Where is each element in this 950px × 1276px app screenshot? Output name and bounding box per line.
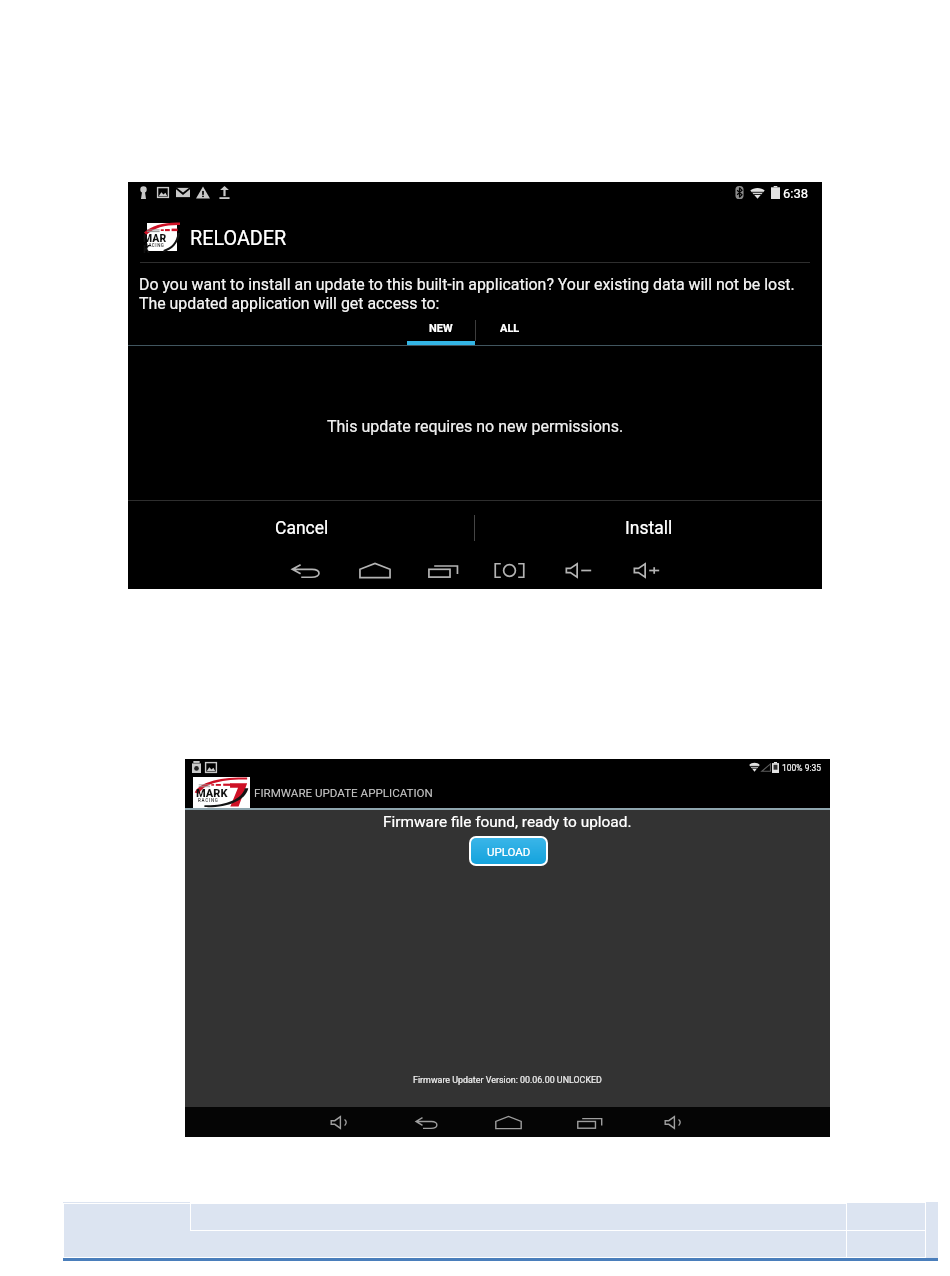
staticText: RELOADER — [190, 227, 287, 250]
button[interactable]: Volume down — [565, 563, 592, 578]
button[interactable]: Cancel — [128, 501, 475, 555]
staticText: Firmware Updater Version: 00.06.00 UNLOC… — [413, 1075, 602, 1085]
button[interactable]: Install — [475, 501, 822, 555]
button[interactable]: Volume up — [633, 563, 660, 578]
button[interactable]: UPLOAD — [471, 838, 546, 864]
staticText: Firmware file found, ready to upload. — [383, 813, 632, 831]
staticText: FIRMWARE UPDATE APPLICATION — [254, 786, 433, 800]
staticText: UPLOAD — [487, 845, 531, 858]
staticText: RACING — [198, 798, 219, 803]
staticText: RACING — [145, 243, 165, 248]
staticText: This update requires no new permissions. — [327, 417, 624, 436]
staticText: 100% 9:35 — [782, 763, 822, 773]
staticText: Install — [625, 518, 673, 539]
staticText: Do you want to install an update to this… — [139, 275, 795, 294]
staticText: 6:38 — [783, 186, 809, 201]
button[interactable]: Recent apps — [428, 563, 459, 578]
button[interactable]: ALL — [476, 315, 544, 342]
button[interactable]: Screenshot — [494, 563, 525, 578]
button[interactable]: Recent apps — [577, 1116, 603, 1129]
button[interactable]: Home — [359, 563, 391, 578]
staticText: MARK — [143, 232, 173, 255]
button[interactable]: Home — [495, 1116, 522, 1129]
button[interactable]: NEW — [407, 315, 475, 342]
staticText: ALL — [500, 322, 520, 335]
staticText: The updated application will get access … — [139, 294, 440, 313]
button[interactable]: Volume — [664, 1116, 684, 1129]
button[interactable]: Back — [291, 563, 323, 578]
staticText: NEW — [429, 322, 453, 335]
staticText: Cancel — [275, 518, 329, 539]
staticText: MARK — [196, 787, 228, 800]
button[interactable]: Back — [415, 1116, 440, 1129]
button[interactable]: Volume — [330, 1116, 350, 1129]
